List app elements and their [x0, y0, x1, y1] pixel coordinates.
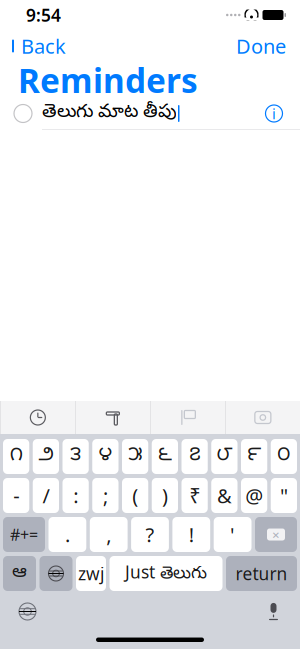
staticText: i	[272, 104, 276, 123]
button[interactable]: ౪	[92, 439, 118, 474]
staticText: ౬	[158, 443, 172, 470]
staticText: -	[13, 482, 19, 509]
button[interactable]: #+=	[3, 517, 45, 552]
staticText: Just తెలుగు	[125, 560, 207, 587]
button[interactable]: Add photo	[226, 401, 300, 434]
button[interactable]: .	[48, 517, 86, 552]
staticText: ₹	[189, 482, 200, 509]
button[interactable]: ౯	[241, 439, 267, 474]
staticText: ,	[106, 521, 111, 548]
button[interactable]: Just తెలుగు	[109, 556, 222, 591]
staticText: #+=	[10, 524, 38, 545]
button[interactable]: Delete	[255, 517, 297, 552]
button[interactable]: ౭	[181, 439, 208, 474]
staticText: ×	[272, 526, 280, 543]
button[interactable]: Keyboard settings	[0, 596, 36, 627]
button[interactable]: Flag	[151, 401, 225, 434]
staticText: ౨	[38, 443, 53, 470]
staticText: '	[230, 521, 235, 548]
staticText: ఆ	[12, 561, 27, 586]
staticText: @	[245, 482, 263, 509]
staticText: ౪	[98, 443, 112, 470]
button[interactable]: -	[3, 478, 29, 513]
staticText: ౭	[189, 443, 200, 470]
button[interactable]: Dictation	[266, 595, 300, 628]
staticText: zwj	[78, 562, 104, 585]
staticText: .	[65, 521, 70, 548]
button[interactable]: Remind me at a location	[76, 401, 150, 434]
button[interactable]: &	[211, 478, 237, 513]
staticText: return	[235, 562, 287, 585]
button[interactable]: ౩	[62, 439, 89, 474]
button[interactable]: ;	[92, 478, 118, 513]
staticText: Reminders	[18, 58, 198, 102]
staticText: )	[162, 482, 168, 509]
button[interactable]: "	[271, 478, 297, 513]
staticText: ౦	[277, 443, 291, 470]
staticText: ౯	[247, 443, 261, 470]
button[interactable]: /	[33, 478, 59, 513]
button[interactable]: return	[226, 556, 297, 591]
button[interactable]: ₹	[181, 478, 208, 513]
staticText: ౫	[128, 443, 142, 470]
button[interactable]: ?	[131, 517, 169, 552]
staticText: ౧	[10, 443, 23, 470]
staticText: /	[42, 482, 49, 509]
button[interactable]: Back	[0, 28, 66, 64]
staticText: &	[217, 482, 232, 509]
staticText: తెలుగు మాట తీపు	[42, 101, 177, 126]
staticText: 9:54	[26, 3, 61, 26]
button[interactable]: ౬	[152, 439, 178, 474]
button[interactable]: ౦	[271, 439, 297, 474]
button[interactable]: ౮	[211, 439, 237, 474]
staticText: (	[132, 482, 138, 509]
button[interactable]: Mark as completed	[0, 99, 42, 127]
button[interactable]: zwj	[76, 556, 106, 591]
button[interactable]: )	[152, 478, 178, 513]
button[interactable]: Details	[265, 104, 300, 122]
button[interactable]: '	[214, 517, 251, 552]
button[interactable]: ౧	[3, 439, 29, 474]
staticText: Done	[236, 33, 286, 59]
button[interactable]: ౨	[33, 439, 59, 474]
button[interactable]: !	[172, 517, 210, 552]
staticText: Back	[21, 33, 66, 59]
staticText: ?	[145, 521, 154, 548]
button[interactable]: @	[241, 478, 267, 513]
button[interactable]: Done	[236, 28, 300, 64]
button[interactable]: Next keyboard	[39, 556, 72, 591]
button[interactable]: ఆ	[3, 556, 36, 591]
button[interactable]: ,	[90, 517, 128, 552]
staticText: "	[280, 482, 288, 509]
staticText: ;	[103, 482, 108, 509]
button[interactable]: :	[62, 478, 89, 513]
staticText: ౮	[216, 443, 232, 470]
button[interactable]: ౫	[122, 439, 148, 474]
button[interactable]: Remind me at a time	[1, 401, 75, 434]
staticText: !	[189, 521, 194, 548]
staticText: :	[73, 482, 78, 509]
button[interactable]: (	[122, 478, 148, 513]
staticText: ౩	[70, 443, 81, 470]
